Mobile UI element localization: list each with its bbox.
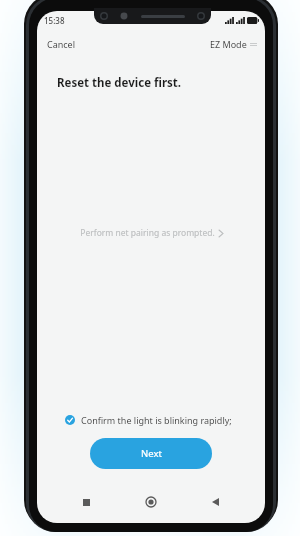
staticText: EZ Mode: [210, 38, 247, 50]
button[interactable]: Home: [136, 487, 166, 517]
button[interactable]: EZ Mode: [202, 33, 265, 55]
button[interactable]: Confirm the light is blinking rapidly;: [37, 410, 265, 430]
staticText: Reset the device first.: [57, 75, 182, 91]
button[interactable]: Recent apps: [73, 489, 100, 516]
staticText: 15:38: [44, 15, 65, 26]
staticText: Next: [141, 447, 162, 460]
button[interactable]: Cancel: [37, 33, 86, 55]
button[interactable]: Perform net pairing as prompted.: [72, 223, 231, 243]
button[interactable]: Next: [90, 438, 212, 469]
staticText: Confirm the light is blinking rapidly;: [81, 414, 232, 426]
button[interactable]: Back: [202, 488, 229, 516]
staticText: Cancel: [47, 38, 76, 50]
staticText: Perform net pairing as prompted.: [80, 227, 215, 239]
